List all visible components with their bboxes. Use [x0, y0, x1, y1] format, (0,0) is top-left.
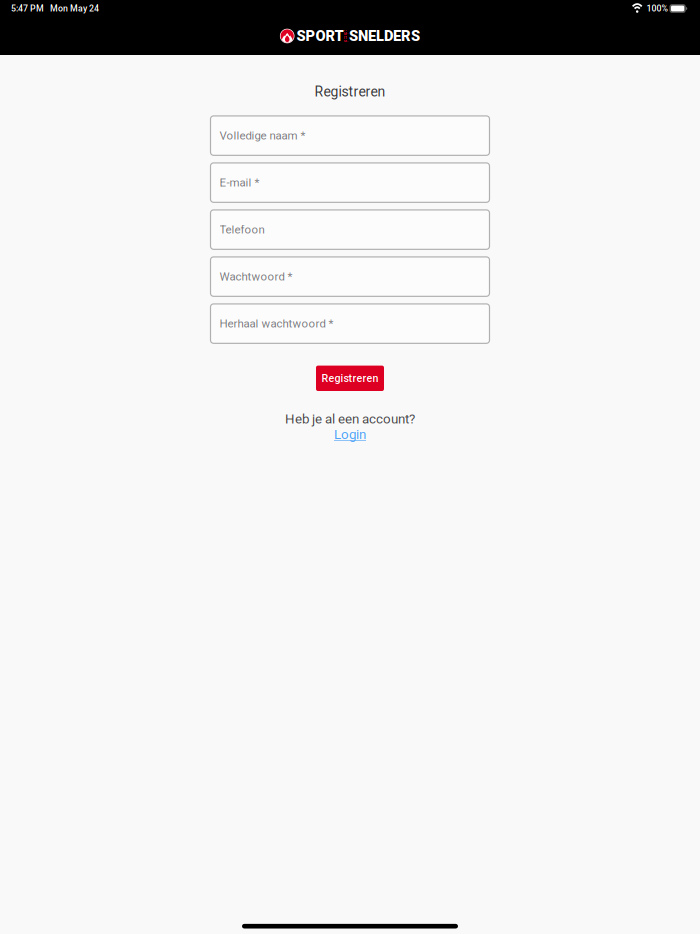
- navigationBar: Sport Snelders: [0, 17, 700, 55]
- button[interactable]: Herhaal wachtwoord *: [210, 304, 489, 343]
- staticText: Herhaal wachtwoord *: [219, 317, 333, 330]
- button[interactable]: Registreren: [316, 366, 384, 391]
- staticText: MIT: [344, 32, 348, 40]
- staticText: SNELDERS: [349, 27, 420, 45]
- staticText: Login: [334, 427, 366, 442]
- button[interactable]: Login: [334, 427, 366, 442]
- staticText: 100%: [646, 3, 667, 14]
- staticText: Volledige naam *: [219, 129, 305, 142]
- staticText: Registreren: [321, 372, 378, 385]
- button[interactable]: Wachtwoord *: [210, 257, 489, 296]
- staticText: SPORT: [296, 27, 343, 45]
- staticText: Heb je al een account?: [285, 411, 415, 427]
- button[interactable]: E-mail *: [210, 163, 489, 202]
- staticText: MIT: [344, 40, 348, 47]
- staticText: Wachtwoord *: [219, 270, 292, 283]
- staticText: Mon May 24: [50, 3, 99, 14]
- button[interactable]: Volledige naam *: [210, 116, 489, 155]
- button[interactable]: Telefoon: [210, 210, 489, 249]
- staticText: 5:47 PM: [11, 3, 44, 14]
- staticText: E-mail *: [219, 176, 259, 189]
- staticText: MIT: [344, 25, 348, 32]
- staticText: Registreren: [314, 83, 385, 100]
- staticText: Telefoon: [219, 223, 264, 236]
